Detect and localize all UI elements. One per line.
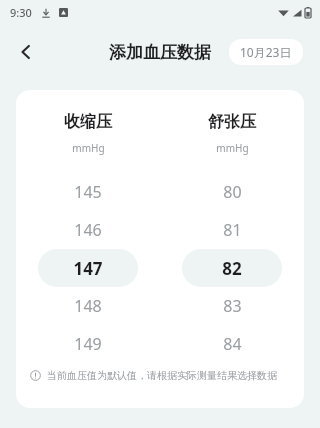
staticText: 81 — [223, 219, 242, 241]
staticText: 146 — [74, 219, 102, 241]
button[interactable]: 82 — [182, 249, 282, 287]
button[interactable]: 145 — [38, 173, 138, 211]
button[interactable]: 80 — [182, 173, 282, 211]
button[interactable]: 83 — [182, 287, 282, 325]
staticText: 84 — [223, 333, 242, 355]
button[interactable]: 10月23日 — [229, 39, 303, 65]
staticText: 83 — [223, 295, 242, 317]
staticText: 添加血压数据 — [109, 42, 211, 63]
staticText: 148 — [74, 295, 102, 317]
button[interactable]: 84 — [182, 325, 282, 363]
button[interactable]: 148 — [38, 287, 138, 325]
staticText: 145 — [74, 181, 102, 203]
staticText: 9:30 — [10, 5, 32, 20]
button[interactable]: 149 — [38, 325, 138, 363]
staticText: 149 — [74, 333, 102, 355]
button[interactable]: 返回 — [6, 32, 46, 72]
staticText: mmHg — [72, 141, 105, 155]
staticText: 10月23日 — [240, 44, 292, 60]
button[interactable]: 147 — [38, 249, 138, 287]
staticText: 80 — [223, 181, 242, 203]
staticText: 当前血压值为默认值，请根据实际测量结果选择数据 — [47, 369, 277, 382]
staticText: 147 — [73, 257, 103, 280]
staticText: 舒张压 — [208, 112, 256, 132]
staticText: mmHg — [216, 141, 249, 155]
staticText: 收缩压 — [64, 112, 112, 132]
button[interactable]: 146 — [38, 211, 138, 249]
staticText: 82 — [222, 257, 242, 280]
button[interactable]: 81 — [182, 211, 282, 249]
